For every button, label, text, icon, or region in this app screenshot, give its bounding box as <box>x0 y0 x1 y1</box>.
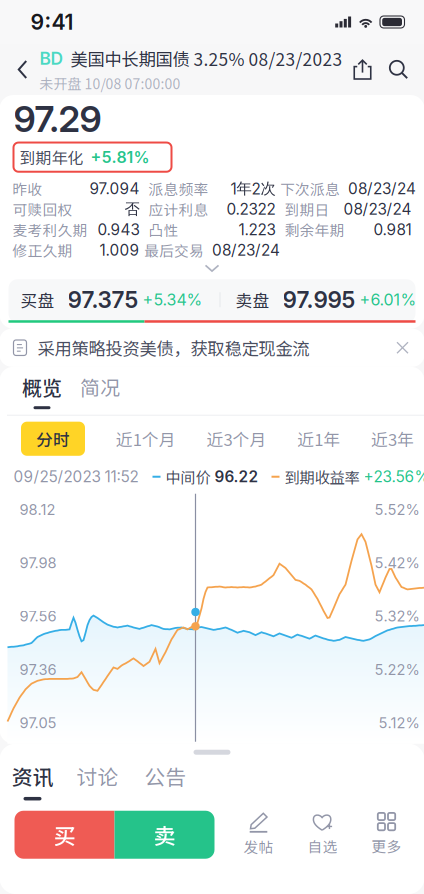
staticText: 08/23/24 <box>343 200 411 219</box>
button[interactable]: Share <box>344 44 380 95</box>
staticText: 5.22% <box>374 661 419 678</box>
staticText: 到期收益率 <box>284 466 359 488</box>
staticText: 可赎回权 <box>12 199 72 220</box>
staticText: 近3年 <box>371 427 414 451</box>
staticText: 买盘 <box>20 288 54 312</box>
staticText: 96.22 <box>214 467 258 486</box>
staticText: 5.42% <box>374 554 419 572</box>
staticText: 近1个月 <box>116 427 176 451</box>
staticText: 简况 <box>80 372 120 401</box>
staticText: 昨收 <box>12 178 42 199</box>
staticText: 97.56 <box>19 607 56 625</box>
button[interactable]: 近3个月 <box>206 427 266 451</box>
button[interactable]: 公告 <box>131 761 199 800</box>
staticText: 97.375 <box>67 286 138 313</box>
staticText: 讨论 <box>76 761 118 791</box>
staticText: 1年2次 <box>230 179 275 198</box>
staticText: 美国中长期国债 3.25% 08/23/2023 <box>70 46 342 71</box>
button[interactable]: Back <box>5 44 39 95</box>
button[interactable]: Search <box>380 44 416 95</box>
staticText: 近3个月 <box>206 427 266 451</box>
staticText: 到期年化 <box>19 146 83 169</box>
button[interactable]: 近1个月 <box>116 427 176 451</box>
staticText: 5.32% <box>374 607 419 625</box>
button[interactable]: Expand details <box>0 257 424 279</box>
staticText: 资讯 <box>11 761 53 791</box>
staticText: +23.56% <box>363 467 424 486</box>
staticText: +5.81% <box>90 147 149 167</box>
staticText: 麦考利久期 <box>12 219 87 240</box>
staticText: 公告 <box>144 761 186 791</box>
staticText: 卖 <box>153 819 175 851</box>
staticText: 9:41 <box>30 9 73 35</box>
staticText: +5.34% <box>142 290 202 309</box>
button[interactable]: 资讯 <box>1 761 63 800</box>
staticText: 派息频率 <box>148 178 208 199</box>
button[interactable]: 发帖 <box>226 810 290 860</box>
button[interactable]: 分时 <box>21 422 85 456</box>
button[interactable]: 更多 <box>354 810 418 860</box>
staticText: 5.52% <box>374 501 419 518</box>
staticText: 凸性 <box>148 219 178 240</box>
staticText: 下次派息 <box>280 178 340 199</box>
staticText: 08/23/24 <box>212 241 280 260</box>
staticText: 近1年 <box>297 427 340 451</box>
staticText: 0.943 <box>97 220 139 239</box>
staticText: 08/23/24 <box>348 179 416 198</box>
button[interactable]: 卖 <box>114 811 214 859</box>
staticText: +6.01% <box>359 290 416 309</box>
staticText: 最后交易 <box>144 240 204 261</box>
staticText: 应计利息 <box>148 199 208 220</box>
staticText: 更多 <box>371 835 401 856</box>
button[interactable]: 自选 <box>290 810 354 860</box>
staticText: 到期日 <box>284 199 329 220</box>
staticText: 5.12% <box>378 714 419 732</box>
staticText: 卖盘 <box>235 288 269 312</box>
staticText: 97.05 <box>19 714 56 732</box>
staticText: 修正久期 <box>12 240 72 261</box>
staticText: 采用策略投资美债，获取稳定现金流 <box>37 335 309 360</box>
staticText: 买 <box>53 819 75 851</box>
staticText: 09/25/2023 11:52 <box>13 467 138 486</box>
button[interactable]: 卖盘 <box>220 279 415 320</box>
button[interactable]: 买盘 <box>8 279 219 320</box>
staticText: 97.98 <box>19 554 56 572</box>
staticText: 0.981 <box>373 220 411 239</box>
staticText: 概览 <box>22 372 62 401</box>
staticText: 98.12 <box>19 501 55 518</box>
button[interactable]: 近1年 <box>297 427 340 451</box>
button[interactable]: 概览 <box>13 372 71 409</box>
staticText: 分时 <box>36 427 70 451</box>
button[interactable]: 简况 <box>71 372 129 409</box>
staticText: 自选 <box>307 835 337 857</box>
staticText: 97.36 <box>19 661 56 678</box>
staticText: 1.009 <box>99 241 139 260</box>
staticText: 97.29 <box>13 97 101 141</box>
staticText: 0.2322 <box>226 200 275 219</box>
staticText: 否 <box>124 200 139 219</box>
button[interactable]: Close <box>388 334 416 362</box>
staticText: 发帖 <box>243 836 273 857</box>
staticText: 1.223 <box>238 220 275 239</box>
staticText: 剩余年期 <box>284 219 344 240</box>
button[interactable]: 讨论 <box>63 761 131 800</box>
staticText: 97.094 <box>89 179 139 198</box>
button[interactable]: 近3年 <box>371 427 414 451</box>
staticText: 中间价 <box>165 466 210 488</box>
staticText: 未开盘 10/08 07:00:00 <box>39 73 180 93</box>
staticText: 97.995 <box>282 286 355 313</box>
staticText: BD <box>39 48 63 69</box>
button[interactable]: 买 <box>14 811 114 859</box>
